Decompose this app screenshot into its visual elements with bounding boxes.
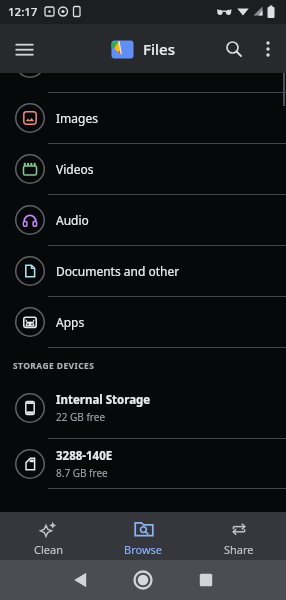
- staticText: Apps: [56, 314, 85, 330]
- staticText: Audio: [56, 212, 89, 228]
- staticText: Internal Storage: [56, 392, 151, 408]
- staticText: 8.7 GB free: [56, 466, 108, 480]
- staticText: Files: [143, 39, 175, 59]
- button[interactable]: [192, 566, 220, 594]
- button[interactable]: [218, 33, 250, 65]
- staticText: 22 GB free: [56, 410, 106, 424]
- button[interactable]: [66, 566, 94, 594]
- staticText: Clean: [34, 542, 63, 557]
- staticText: Browse: [124, 542, 163, 557]
- staticText: Share: [224, 542, 254, 557]
- button[interactable]: [6, 31, 42, 67]
- button[interactable]: Videos: [0, 144, 286, 194]
- button[interactable]: Share: [191, 512, 286, 560]
- staticText: Images: [56, 110, 98, 126]
- button[interactable]: Documents and other: [0, 246, 286, 296]
- button[interactable]: Images: [0, 93, 286, 143]
- staticText: 12:17: [8, 4, 38, 20]
- button[interactable]: [252, 33, 284, 65]
- button[interactable]: Apps: [0, 297, 286, 347]
- button[interactable]: Audio: [0, 195, 286, 245]
- staticText: STORAGE DEVICES: [13, 360, 95, 372]
- staticText: Documents and other: [56, 263, 180, 279]
- staticText: 3288-140E: [56, 448, 113, 464]
- button[interactable]: Browse: [96, 512, 191, 560]
- button[interactable]: Internal Storage: [0, 378, 286, 438]
- staticText: Videos: [56, 161, 94, 177]
- button[interactable]: [129, 566, 157, 594]
- button[interactable]: 3288-140E: [0, 439, 286, 488]
- button[interactable]: Clean: [0, 512, 96, 560]
